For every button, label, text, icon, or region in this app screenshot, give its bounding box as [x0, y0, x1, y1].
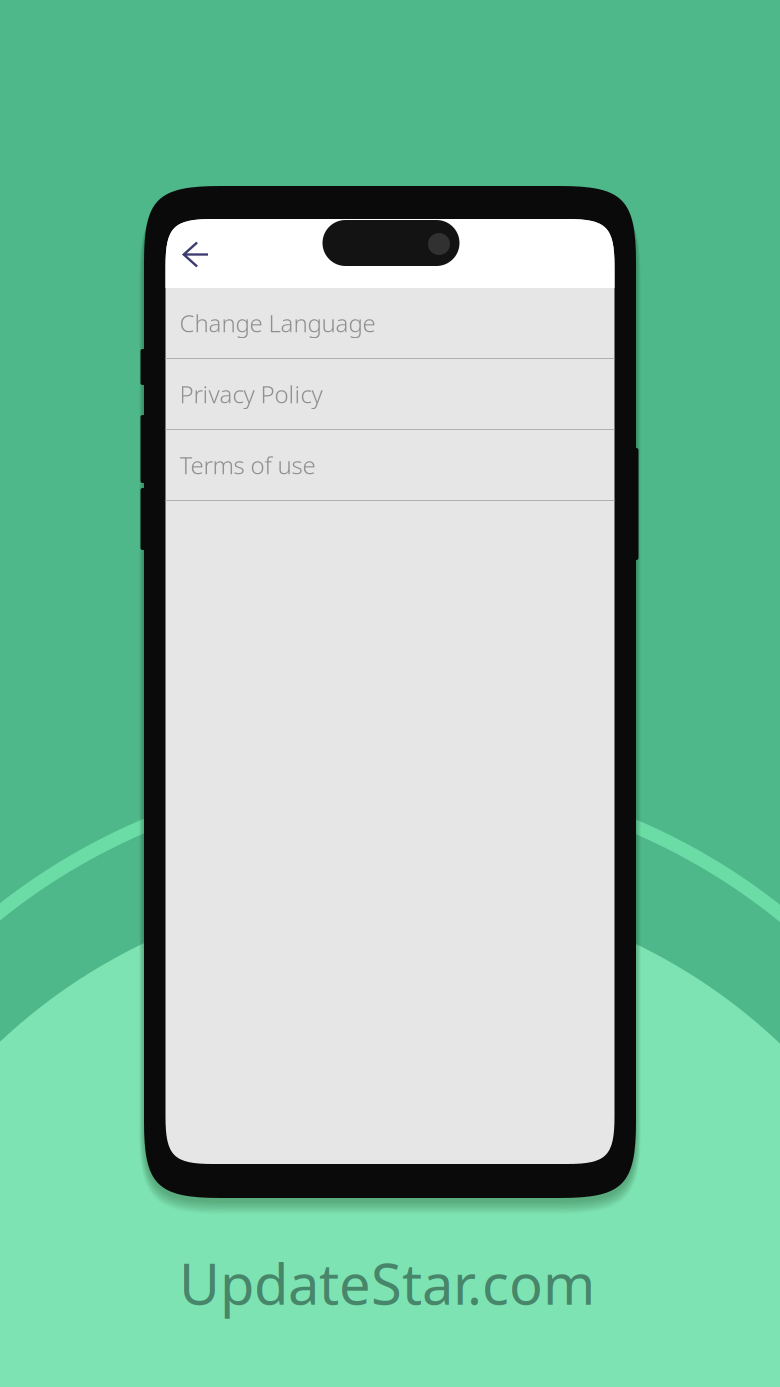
staticText: Terms of use — [179, 449, 315, 481]
button[interactable]: Privacy Policy — [165, 359, 614, 430]
staticText: Change Language — [179, 307, 375, 339]
button[interactable]: Back — [165, 219, 224, 288]
staticText: Privacy Policy — [179, 378, 322, 410]
button[interactable]: Change Language — [165, 288, 614, 359]
button[interactable]: Terms of use — [165, 430, 614, 501]
staticText: UpdateStar.com — [179, 1246, 595, 1320]
